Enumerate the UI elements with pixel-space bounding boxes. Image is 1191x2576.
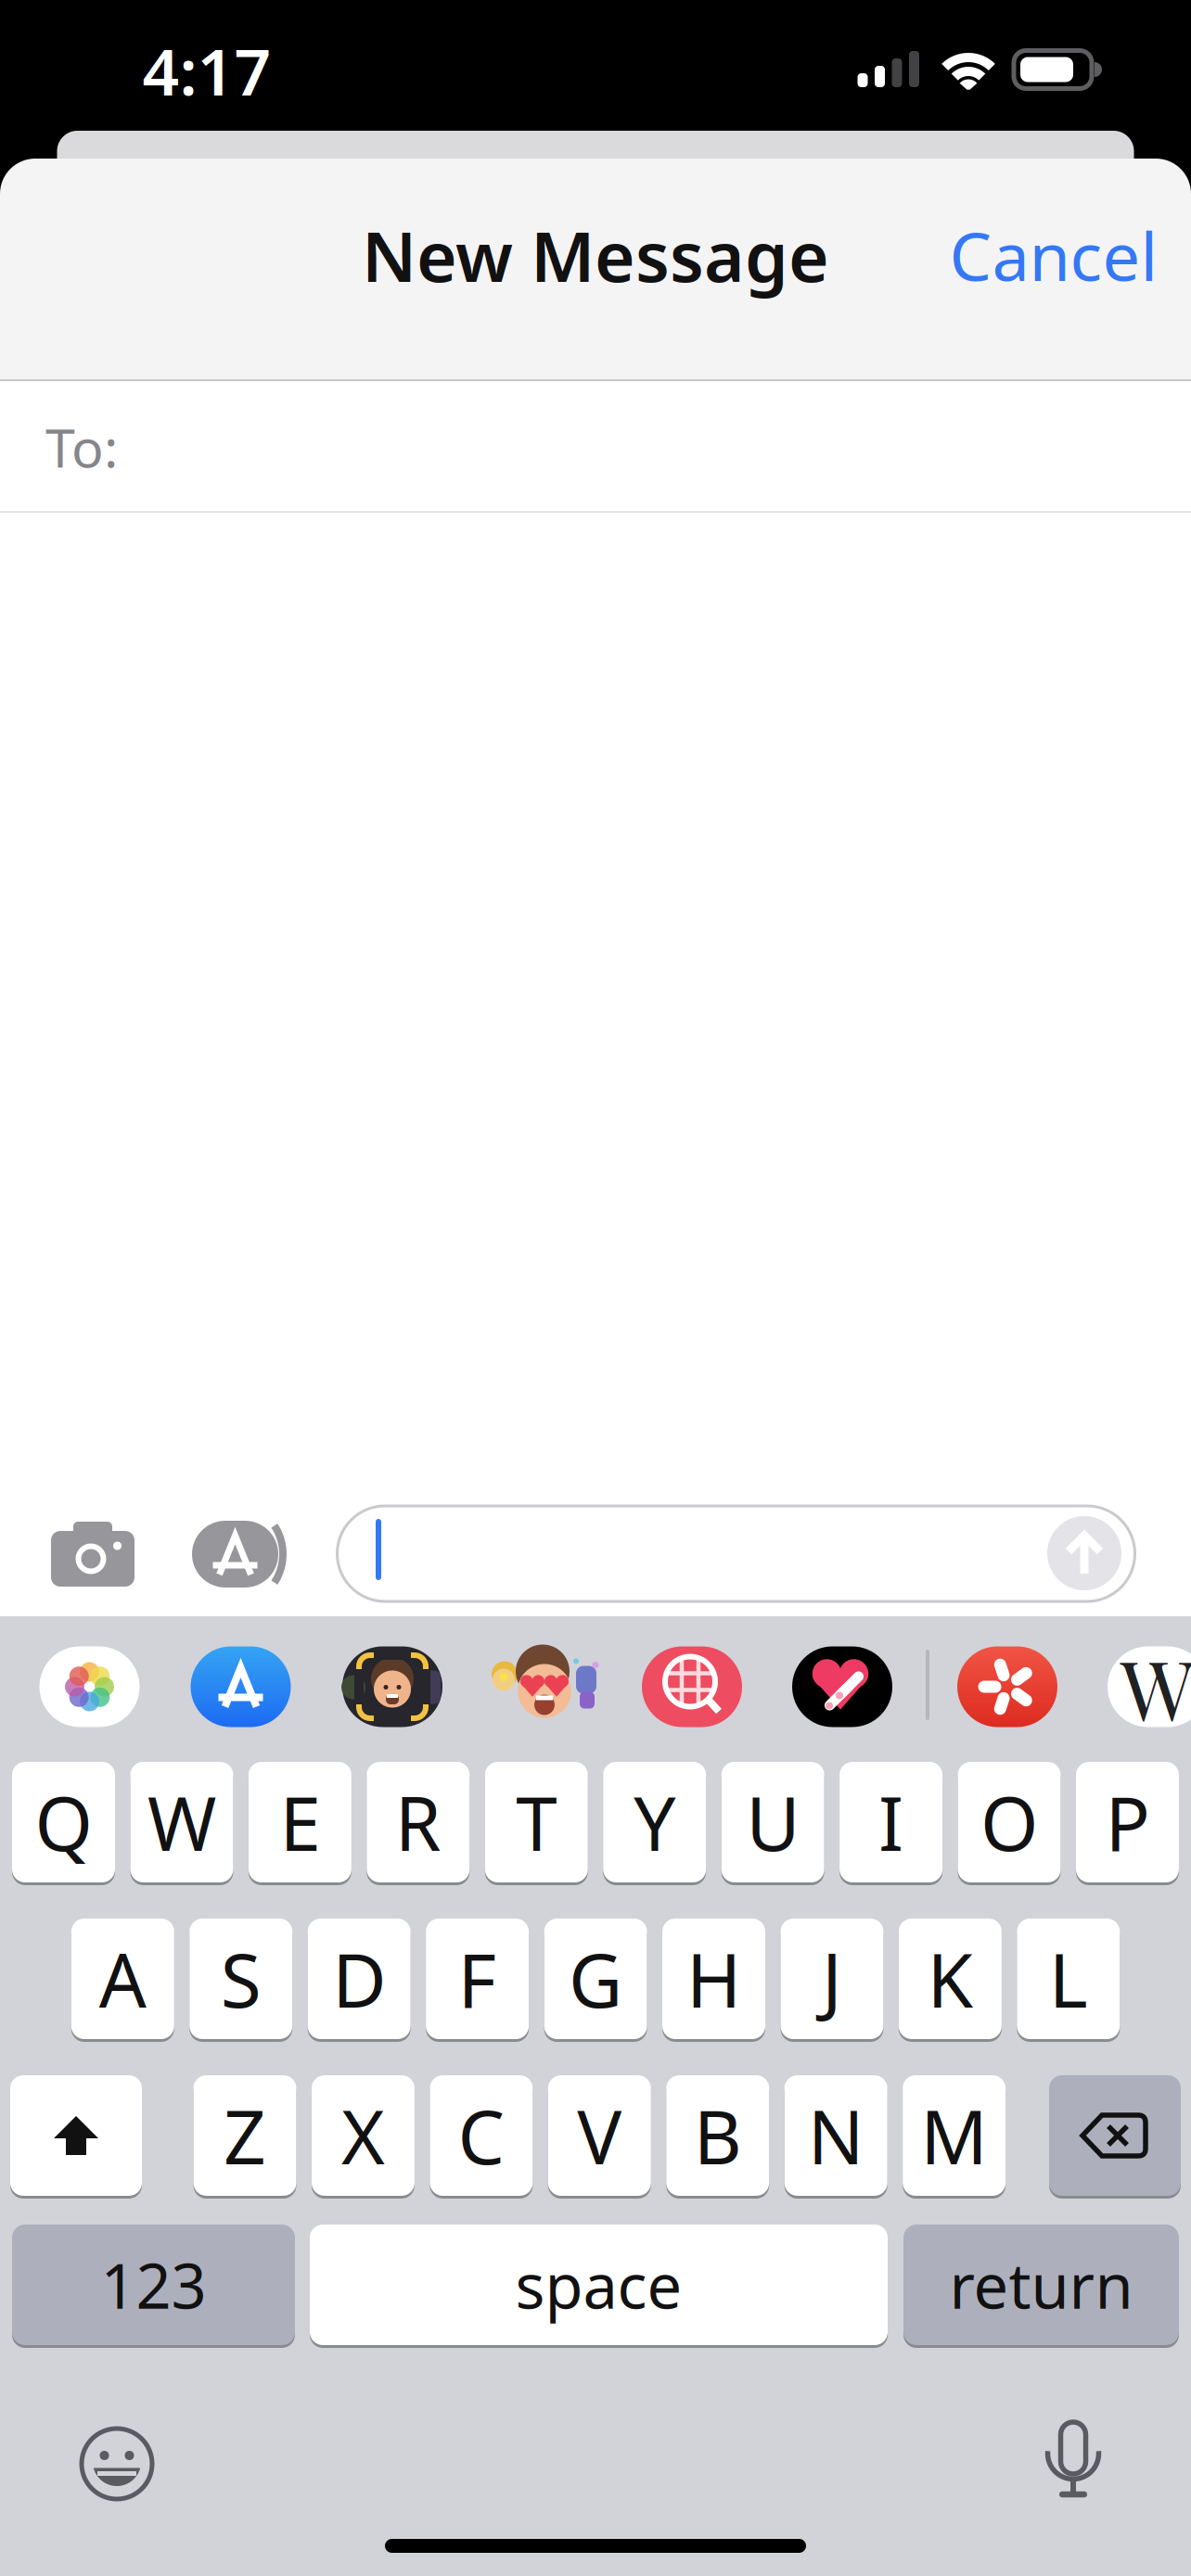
- button[interactable]: space: [310, 2225, 888, 2345]
- button[interactable]: Y: [603, 1762, 706, 1882]
- button[interactable]: Send: [1047, 1516, 1121, 1590]
- button[interactable]: R: [367, 1762, 470, 1882]
- staticText: F: [458, 1930, 497, 2028]
- staticText: W: [147, 1773, 216, 1871]
- button[interactable]: App Store: [191, 1646, 291, 1727]
- button[interactable]: Yelp: [957, 1646, 1057, 1727]
- button[interactable]: F: [426, 1919, 529, 2039]
- button[interactable]: J: [780, 1919, 883, 2039]
- staticText: Cancel: [949, 211, 1158, 299]
- button[interactable]: B: [666, 2075, 769, 2196]
- button[interactable]: Emoji: [78, 2425, 156, 2503]
- staticText: To:: [45, 412, 118, 482]
- staticText: S: [220, 1930, 261, 2028]
- button[interactable]: To:: [0, 381, 1191, 513]
- button[interactable]: C: [430, 2075, 533, 2196]
- button[interactable]: D: [308, 1919, 411, 2039]
- button[interactable]: E: [248, 1762, 351, 1882]
- staticText: R: [395, 1773, 441, 1871]
- button[interactable]: P: [1076, 1762, 1179, 1882]
- staticText: X: [341, 2086, 385, 2185]
- button[interactable]: Shift: [10, 2075, 142, 2196]
- button[interactable]: Apps: [192, 1520, 294, 1588]
- button[interactable]: Cancel: [949, 211, 1158, 299]
- staticText: C: [458, 2086, 505, 2185]
- staticText: H: [686, 1930, 741, 2028]
- button[interactable]: [337, 1506, 1135, 1601]
- staticText: space: [515, 2244, 682, 2326]
- button[interactable]: M: [903, 2075, 1006, 2196]
- button[interactable]: A: [71, 1919, 174, 2039]
- button[interactable]: S: [189, 1919, 292, 2039]
- button[interactable]: Photos: [39, 1646, 140, 1727]
- staticText: J: [822, 1930, 842, 2028]
- staticText: return: [949, 2244, 1133, 2326]
- staticText: I: [879, 1773, 904, 1871]
- staticText: L: [1049, 1930, 1088, 2028]
- staticText: New Message: [362, 209, 829, 301]
- staticText: D: [332, 1930, 386, 2028]
- staticText: V: [577, 2086, 622, 2185]
- staticText: E: [280, 1773, 320, 1871]
- staticText: Q: [35, 1773, 92, 1871]
- staticText: T: [516, 1773, 557, 1871]
- staticText: B: [694, 2086, 742, 2185]
- button[interactable]: Dictation: [1045, 2417, 1101, 2502]
- button[interactable]: X: [312, 2075, 415, 2196]
- button[interactable]: U: [721, 1762, 824, 1882]
- staticText: M: [920, 2086, 988, 2185]
- staticText: G: [569, 1930, 622, 2028]
- button[interactable]: Animoji: [342, 1646, 442, 1727]
- button[interactable]: L: [1017, 1919, 1120, 2039]
- staticText: A: [99, 1930, 146, 2028]
- button[interactable]: G: [544, 1919, 647, 2039]
- button[interactable]: I: [840, 1762, 943, 1882]
- button[interactable]: 123: [12, 2225, 295, 2345]
- staticText: W: [1121, 1633, 1191, 1742]
- staticText: O: [980, 1773, 1038, 1871]
- button[interactable]: Z: [193, 2075, 296, 2196]
- button[interactable]: T: [485, 1762, 588, 1882]
- button[interactable]: Memoji Stickers: [491, 1646, 598, 1727]
- staticText: U: [746, 1773, 800, 1871]
- button[interactable]: K: [899, 1919, 1002, 2039]
- staticText: Y: [634, 1773, 675, 1871]
- staticText: Z: [224, 2086, 266, 2185]
- button[interactable]: Wikipedia: [1108, 1646, 1191, 1727]
- button[interactable]: Camera: [51, 1522, 134, 1587]
- staticText: P: [1105, 1773, 1150, 1871]
- button[interactable]: H: [662, 1919, 765, 2039]
- button[interactable]: return: [903, 2225, 1179, 2345]
- button[interactable]: O: [958, 1762, 1061, 1882]
- staticText: 4:17: [142, 28, 271, 113]
- button[interactable]: Delete: [1049, 2075, 1181, 2196]
- staticText: 123: [101, 2244, 206, 2326]
- staticText: N: [808, 2086, 864, 2185]
- staticText: K: [927, 1930, 973, 2028]
- button[interactable]: Q: [12, 1762, 115, 1882]
- button[interactable]: N: [784, 2075, 887, 2196]
- button[interactable]: Search: [642, 1646, 742, 1727]
- button[interactable]: V: [548, 2075, 651, 2196]
- button[interactable]: W: [130, 1762, 233, 1882]
- button[interactable]: Digital Touch: [792, 1646, 892, 1727]
